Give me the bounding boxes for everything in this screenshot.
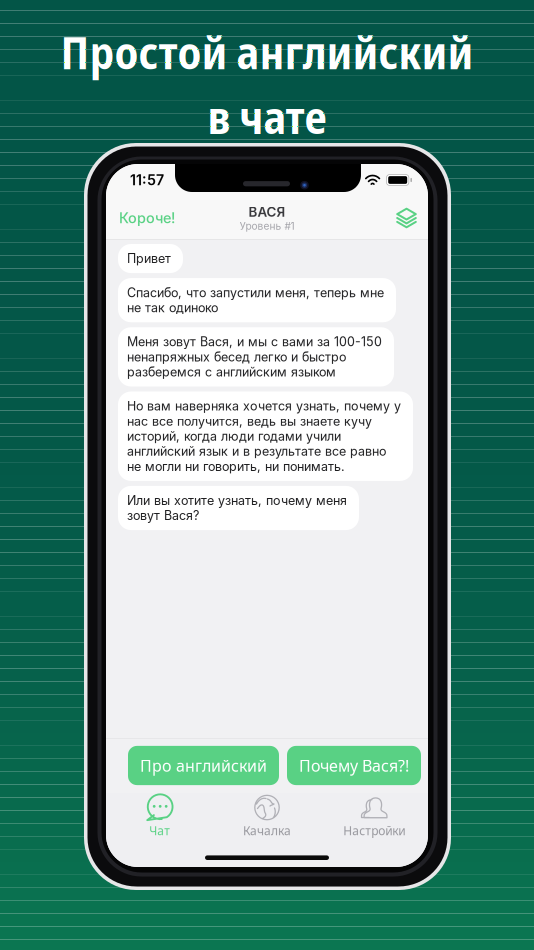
staticText: Настройки (343, 822, 405, 838)
staticText: Простой английский (60, 21, 473, 82)
button[interactable]: Чат (106, 793, 213, 839)
button[interactable]: Короче! (106, 201, 188, 235)
button[interactable]: Настройки (321, 793, 428, 839)
staticText: Чат (149, 822, 170, 838)
staticText: Качалка (243, 822, 291, 838)
staticText: 11:57 (130, 171, 164, 188)
button[interactable]: Layers (385, 200, 428, 235)
staticText: в чате (207, 85, 326, 147)
staticText: Но вам наверняка хочется узнать, почему … (127, 398, 401, 474)
button[interactable]: Про английский (128, 746, 279, 785)
button[interactable]: Качалка (213, 793, 321, 839)
staticText: Привет (127, 251, 171, 266)
staticText: Уровень #1 (239, 220, 294, 232)
button[interactable]: Почему Вася?! (287, 746, 421, 785)
staticText: ВАСЯ (248, 204, 285, 220)
staticText: Или вы хотите узнать, почему меня зовут … (127, 493, 347, 523)
staticText: Спасибо, что запустили меня, теперь мне … (127, 285, 384, 315)
staticText: Короче! (119, 209, 175, 227)
staticText: Почему Вася?! (299, 755, 409, 776)
staticText: Меня зовут Вася, и мы с вами за 100-150 … (127, 334, 382, 379)
staticText: Про английский (140, 755, 267, 776)
